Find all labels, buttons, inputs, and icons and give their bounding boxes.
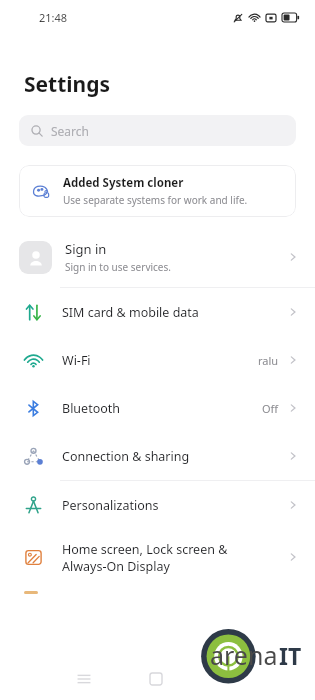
staticText: 21:48 [39, 10, 68, 25]
staticText: Search [51, 123, 89, 139]
staticText: Sign in to use services. [65, 260, 171, 274]
staticText: Personalizations [62, 497, 287, 514]
button[interactable]: Home screen, Lock screen & Always-On Dis… [0, 529, 315, 585]
button[interactable]: Recents [68, 663, 100, 695]
staticText: Off [262, 401, 279, 416]
button[interactable]: SIM card & mobile data [0, 288, 315, 336]
staticText: IT [279, 640, 302, 671]
button[interactable]: Connection & sharing [0, 432, 315, 480]
staticText: ralu [258, 353, 279, 368]
button[interactable]: Personalizations [0, 481, 315, 529]
button[interactable]: Home [140, 663, 172, 695]
staticText: Wi-Fi [62, 352, 258, 369]
staticText: Sign in [65, 240, 107, 258]
staticText: SIM card & mobile data [62, 304, 287, 321]
staticText: Settings [24, 70, 111, 99]
staticText: Bluetooth [62, 400, 262, 417]
staticText: Connection & sharing [62, 448, 287, 465]
staticText: arena [210, 638, 278, 672]
button[interactable]: Wi-Fi [0, 336, 315, 384]
button[interactable]: Bluetooth [0, 384, 315, 432]
button[interactable]: Search [19, 115, 296, 146]
staticText: Use separate systems for work and life. [63, 193, 248, 207]
button[interactable]: Added System cloner [19, 165, 296, 217]
staticText: Home screen, Lock screen & Always-On Dis… [62, 541, 287, 574]
staticText: Added System cloner [63, 175, 184, 191]
button[interactable]: Sign in [0, 227, 315, 287]
